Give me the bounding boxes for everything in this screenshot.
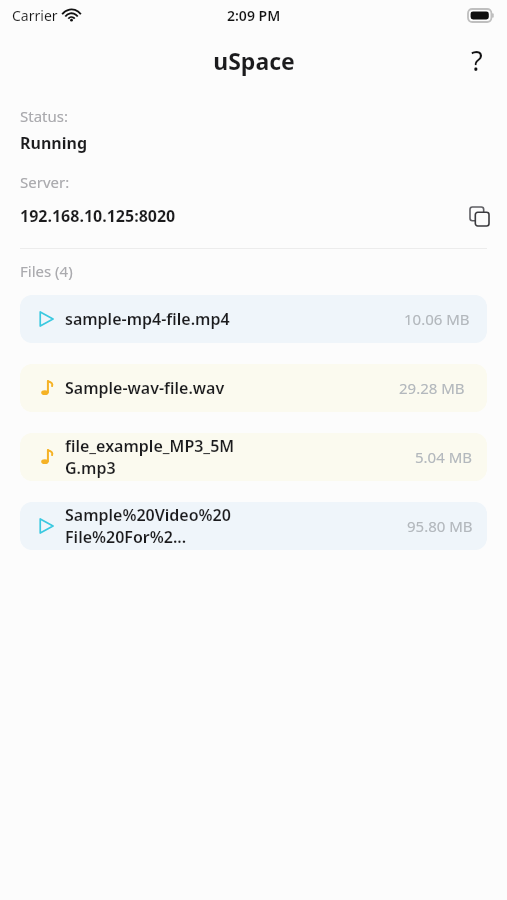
- staticText: sample-mp4-file.mp4: [65, 308, 230, 330]
- staticText: 2:09 PM: [227, 6, 281, 25]
- staticText: Sample%20Video%20File%20For%2...: [65, 504, 233, 548]
- staticText: Running: [20, 132, 87, 154]
- staticText: Sample-wav-file.wav: [65, 377, 225, 399]
- button[interactable]: file_example_MP3_5MG.mp3: [20, 433, 487, 481]
- staticText: 10.06 MB: [404, 309, 470, 329]
- button[interactable]: sample-mp4-file.mp4: [20, 295, 487, 343]
- staticText: file_example_MP3_5MG.mp3: [65, 435, 237, 479]
- button[interactable]: Sample%20Video%20File%20For%2...: [20, 502, 487, 550]
- staticText: 95.80 MB: [407, 516, 473, 536]
- staticText: 192.168.10.125:8020: [20, 205, 176, 227]
- staticText: ?: [471, 42, 483, 79]
- staticText: 29.28 MB: [399, 378, 465, 398]
- staticText: Files (4): [20, 261, 73, 281]
- button[interactable]: Copy server address: [461, 198, 497, 234]
- staticText: Carrier: [12, 6, 58, 25]
- button[interactable]: Sample-wav-file.wav: [20, 364, 487, 412]
- staticText: 5.04 MB: [415, 447, 473, 467]
- staticText: Server:: [20, 172, 70, 192]
- staticText: Status:: [20, 106, 68, 126]
- button[interactable]: Help: [455, 38, 499, 82]
- staticText: uSpace: [213, 45, 295, 76]
